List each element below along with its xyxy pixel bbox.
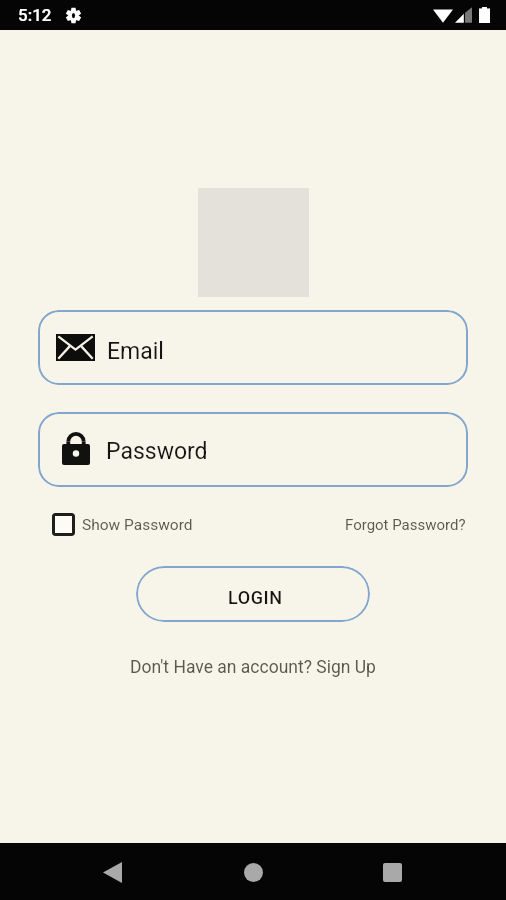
staticText: Password: [106, 438, 208, 465]
button[interactable]: Email: [38, 310, 468, 385]
staticText: Show Password: [82, 516, 193, 534]
button[interactable]: Don't Have an account? Sign Up: [130, 657, 376, 678]
button[interactable]: Recents: [372, 852, 412, 892]
button[interactable]: Show Password: [52, 513, 193, 536]
button[interactable]: Back: [92, 852, 132, 892]
staticText: Email: [107, 338, 164, 365]
staticText: LOGIN: [228, 587, 283, 608]
button[interactable]: LOGIN: [136, 566, 370, 622]
button[interactable]: Home: [233, 852, 273, 892]
button[interactable]: Forgot Password?: [345, 516, 466, 534]
button[interactable]: Password: [38, 412, 468, 487]
staticText: 5:12: [18, 5, 52, 25]
